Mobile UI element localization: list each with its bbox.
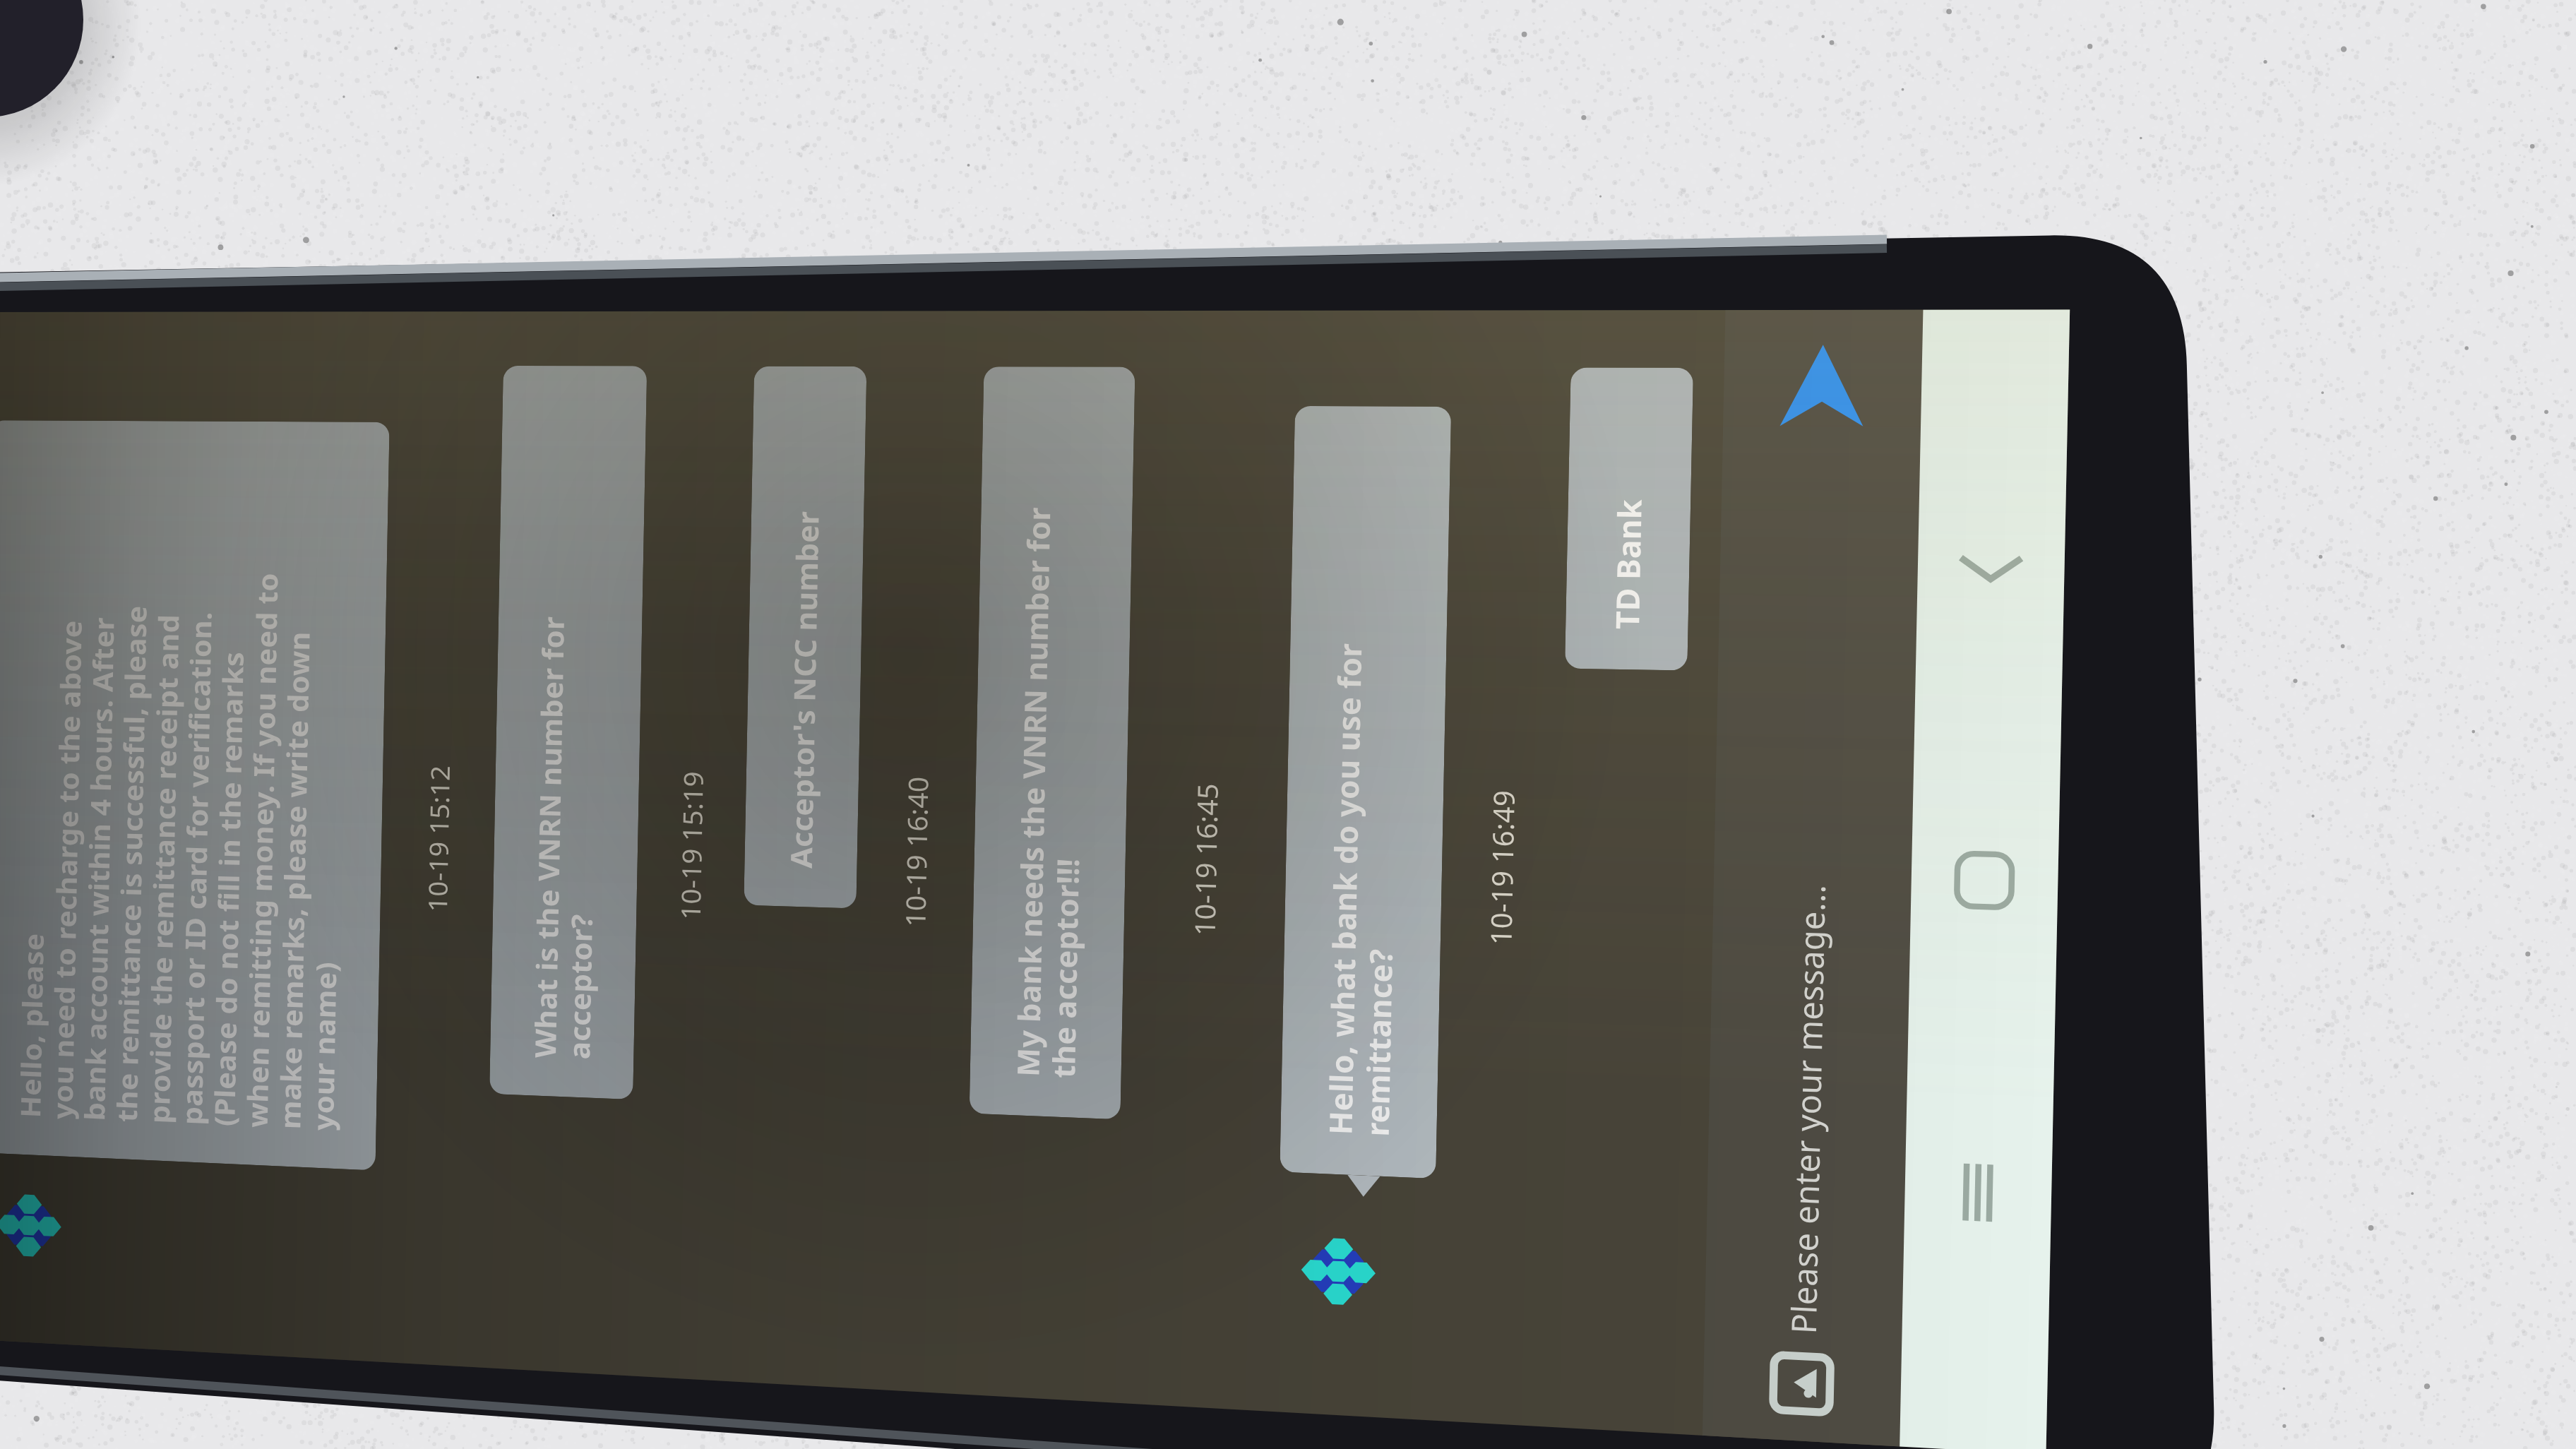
button[interactable]: Acceptor's NCC number	[744, 366, 867, 908]
button[interactable]: Hello, what bank do you use for remittan…	[1280, 406, 1451, 1179]
staticText: My bank needs the VNRN number for the ac…	[1007, 507, 1095, 1079]
button[interactable]: Please enter your message...	[1705, 443, 1920, 1339]
staticText: Please enter your message...	[1780, 884, 1836, 1335]
staticText: 10-19 16:40	[896, 775, 936, 927]
button[interactable]: Open contact profile	[1277, 1211, 1394, 1332]
staticText: 10-19 16:45	[1185, 782, 1226, 936]
staticText: Hello, please you need to recharge to th…	[11, 570, 352, 1131]
button[interactable]: What is the VNRN number for acceptor?	[489, 366, 647, 1100]
button[interactable]: Send	[1762, 327, 1883, 444]
staticText: What is the VNRN number for acceptor?	[525, 616, 607, 1060]
button[interactable]: Open contact profile	[0, 1170, 77, 1281]
staticText: 10-19 16:49	[1481, 789, 1523, 946]
button[interactable]: TD Bank	[1565, 368, 1693, 671]
staticText: 10-19 15:19	[672, 770, 711, 920]
button[interactable]: Hello, please you need to recharge to th…	[0, 420, 390, 1170]
staticText: Hello, what bank do you use for remittan…	[1319, 643, 1408, 1137]
staticText: TD Bank	[1605, 499, 1651, 630]
staticText: Acceptor's NCC number	[780, 511, 828, 869]
button[interactable]: Attach image	[1760, 1342, 1843, 1426]
button[interactable]: Recent apps	[1920, 1136, 2036, 1250]
button[interactable]: Home	[1927, 824, 2042, 937]
button[interactable]: My bank needs the VNRN number for the ac…	[969, 367, 1135, 1120]
staticText: 10-19 15:12	[419, 764, 457, 912]
button[interactable]: Back	[1933, 512, 2049, 623]
